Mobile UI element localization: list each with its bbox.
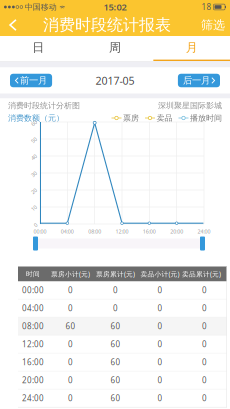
staticText: 12:00 [22,339,44,349]
staticText: 0 [34,221,37,229]
staticText: 前一月 [20,75,47,86]
button[interactable]: 筛选 [197,14,229,36]
staticText: 周 [109,40,121,55]
staticText: 0 [157,357,162,367]
staticText: 24:00 [22,393,44,403]
staticText: 后一月 [183,75,210,86]
staticText: 卖品小计(元) [140,270,179,278]
staticText: 筛选 [201,18,225,32]
staticText: 60 [31,119,37,127]
staticText: 00:00 [33,228,46,235]
staticText: 0 [202,303,207,313]
staticText: 60 [65,321,75,331]
staticText: 60 [110,375,120,385]
staticText: 0 [113,285,118,295]
staticText: 时间 [26,270,40,278]
staticText: 0 [157,285,162,295]
staticText: 卖品累计(元) [182,270,221,278]
staticText: 0 [157,393,162,403]
staticText: 票房小计(元) [51,270,90,278]
staticText: 24:00 [197,228,210,235]
staticText: 0 [157,321,162,331]
staticText: 08:00 [22,321,44,331]
staticText: 04:00 [61,228,74,235]
staticText: 0 [202,339,207,349]
staticText: 0 [202,357,207,367]
button[interactable]: 返回 [1,14,25,36]
staticText: 0 [202,285,207,295]
staticText: 消费数额（元） [8,113,64,123]
staticText: 月 [186,40,198,55]
staticText: 60 [110,357,120,367]
staticText: 0 [202,393,207,403]
staticText: 深圳聚星国际影城 [158,101,222,110]
button[interactable]: 周 [77,36,153,61]
staticText: 日 [32,40,44,55]
staticText: 00:00 [22,285,44,295]
staticText: 16:00 [22,357,44,367]
staticText: 0 [68,357,73,367]
staticText: 60 [110,339,120,349]
staticText: 0 [68,285,73,295]
staticText: 2017-05 [95,73,134,88]
staticText: 20 [31,187,37,195]
staticText: 04:00 [22,303,44,313]
staticText: 15:02 [103,1,126,13]
staticText: 0 [157,339,162,349]
staticText: 30 [31,170,37,178]
staticText: 0 [68,339,73,349]
staticText: 0 [68,393,73,403]
staticText: 0 [157,303,162,313]
staticText: 卖品 [156,113,172,123]
staticText: 中国移动 [23,2,57,12]
button[interactable]: 日 [0,36,77,61]
staticText: 12:00 [115,228,128,235]
staticText: 20:00 [170,228,183,235]
staticText: 16:00 [143,228,156,235]
staticText: 60 [110,393,120,403]
staticText: 60 [110,321,120,331]
staticText: 消费时段统计分析图 [8,101,80,110]
staticText: 0 [68,303,73,313]
staticText: 0 [68,375,73,385]
staticText: 票房 [123,113,139,123]
button[interactable]: 后一月 [178,74,220,87]
staticText: 20:00 [22,375,44,385]
staticText: 票房累计(元) [96,270,135,278]
staticText: 10 [31,204,37,212]
staticText: 40 [31,153,37,161]
staticText: 18 [201,2,211,12]
staticText: 0 [202,321,207,331]
staticText: 08:00 [88,228,101,235]
button[interactable]: 前一月 [10,74,52,87]
staticText: 0 [202,375,207,385]
staticText: 消费时段统计报表 [43,15,171,35]
staticText: 50 [31,136,37,144]
staticText: 0 [113,303,118,313]
staticText: 0 [157,375,162,385]
button[interactable]: 月 [153,36,230,61]
staticText: 播放时间 [190,113,222,123]
